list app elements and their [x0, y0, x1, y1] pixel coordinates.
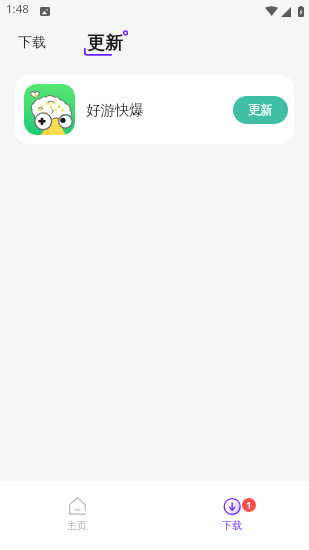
- other: Home: [69, 497, 86, 515]
- staticText: 更新: [87, 32, 123, 55]
- other: Downloads: [224, 498, 241, 515]
- staticText: 1: [246, 499, 252, 511]
- staticText: 主页: [67, 519, 87, 532]
- button[interactable]: 更新: [233, 96, 288, 124]
- staticText: 下载: [18, 34, 46, 52]
- button[interactable]: Home: [0, 481, 154, 550]
- staticText: 更新: [248, 102, 273, 118]
- staticText: 好游快爆: [86, 101, 144, 119]
- button[interactable]: 下载: [10, 24, 54, 56]
- button[interactable]: 好游快爆: [15, 75, 294, 144]
- button[interactable]: 更新: [79, 23, 139, 61]
- staticText: 下载: [222, 519, 242, 532]
- button[interactable]: Downloads: [154, 481, 309, 550]
- staticText: 1:48: [6, 1, 29, 17]
